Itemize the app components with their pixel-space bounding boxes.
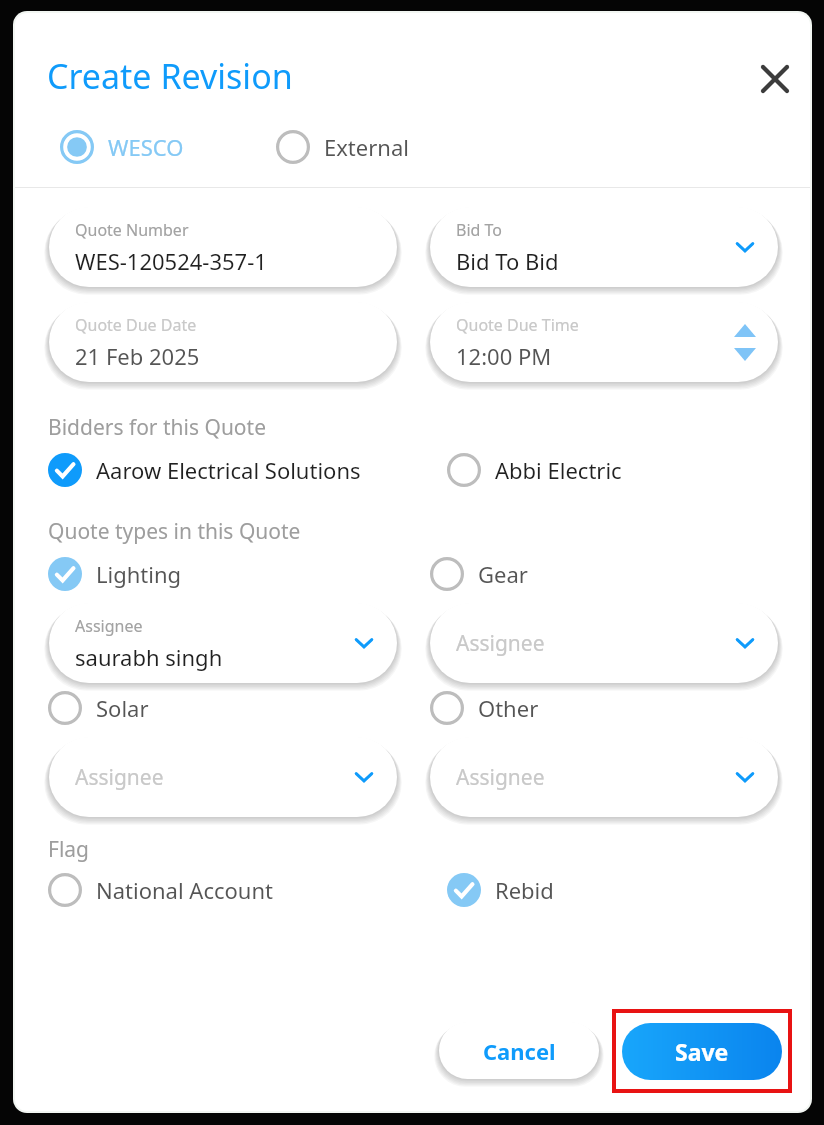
staticText: Assignee (75, 763, 164, 792)
button[interactable]: Quote Due Time (430, 302, 778, 382)
button[interactable]: Aarow Electrical Solutions (48, 453, 361, 487)
staticText: Rebid (495, 875, 554, 905)
staticText: saurabh singh (75, 642, 223, 672)
staticText: Quote Number (75, 219, 189, 241)
button[interactable]: Assignee (49, 737, 397, 817)
staticText: Assignee (456, 763, 545, 792)
staticText: Lighting (96, 559, 182, 589)
button[interactable]: Close (753, 57, 797, 101)
staticText: Aarow Electrical Solutions (96, 455, 361, 485)
button[interactable]: Rebid (447, 873, 554, 907)
button[interactable]: Bid To (430, 207, 778, 287)
staticText: Bidders for this Quote (48, 413, 267, 442)
button[interactable]: WESCO (60, 130, 184, 164)
staticText: External (324, 132, 409, 162)
button[interactable]: Gear (430, 557, 528, 591)
staticText: Solar (96, 693, 149, 723)
staticText: Quote types in this Quote (48, 517, 301, 546)
button[interactable]: Assignee (430, 737, 778, 817)
staticText: 12:00 PM (456, 341, 552, 371)
staticText: Create Revision (47, 53, 293, 99)
button[interactable]: Lighting (48, 557, 182, 591)
button[interactable]: Assignee (49, 603, 397, 683)
button[interactable]: Assignee (430, 603, 778, 683)
staticText: Cancel (483, 1036, 556, 1066)
staticText: WESCO (108, 132, 184, 162)
staticText: Abbi Electric (495, 455, 622, 485)
staticText: Gear (478, 559, 528, 589)
staticText: Bid To Bid (456, 246, 559, 276)
button[interactable]: Solar (48, 691, 149, 725)
button[interactable]: Cancel (439, 1022, 599, 1079)
staticText: Save (675, 1036, 729, 1067)
button[interactable]: External (276, 130, 409, 164)
button[interactable]: National Account (48, 873, 273, 907)
button[interactable]: Other (430, 691, 539, 725)
button[interactable]: Quote Due Date (49, 302, 397, 382)
staticText: Flag (48, 835, 90, 864)
staticText: 21 Feb 2025 (75, 341, 200, 371)
staticText: Other (478, 693, 539, 723)
staticText: WES-120524-357-1 (75, 246, 267, 276)
staticText: Assignee (75, 615, 143, 637)
staticText: Assignee (456, 629, 545, 658)
staticText: Bid To (456, 219, 502, 241)
button[interactable]: Abbi Electric (447, 453, 622, 487)
staticText: Quote Due Date (75, 314, 197, 336)
button[interactable]: Quote Number (49, 207, 397, 287)
staticText: National Account (96, 875, 273, 905)
staticText: Quote Due Time (456, 314, 579, 336)
button[interactable]: Save (622, 1023, 782, 1080)
